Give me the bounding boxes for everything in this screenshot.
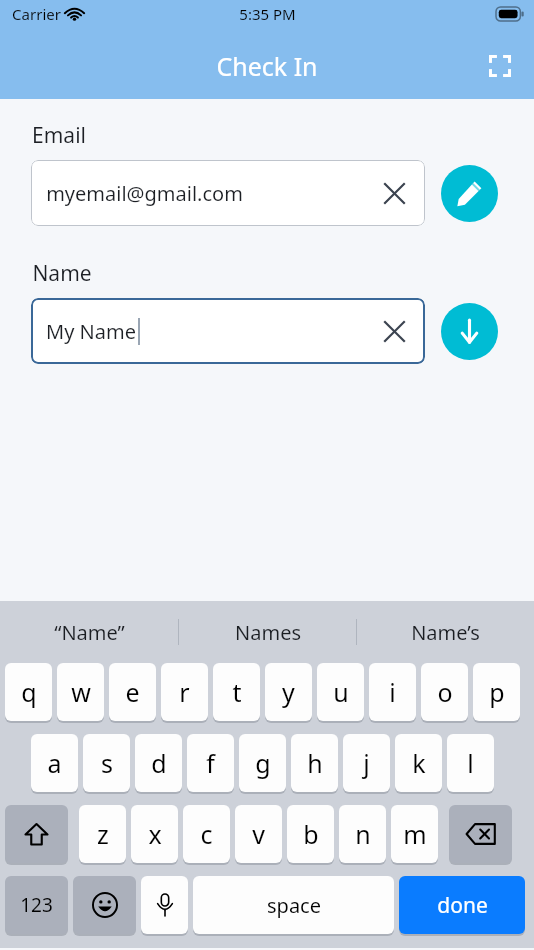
- button[interactable]: My Name: [31, 298, 425, 364]
- button[interactable]: f: [187, 734, 234, 792]
- staticText: u: [333, 675, 349, 709]
- button[interactable]: [141, 876, 188, 934]
- staticText: o: [437, 675, 453, 709]
- button[interactable]: a: [31, 734, 78, 792]
- button[interactable]: [5, 805, 68, 863]
- other: Emoji: [73, 876, 136, 936]
- button[interactable]: s: [83, 734, 130, 792]
- staticText: t: [232, 675, 242, 709]
- other: Backspace: [449, 805, 512, 865]
- staticText: Check In: [216, 49, 318, 83]
- button[interactable]: v: [235, 805, 282, 863]
- staticText: g: [255, 746, 271, 780]
- staticText: l: [467, 746, 474, 780]
- button[interactable]: q: [5, 663, 52, 721]
- button[interactable]: “Name”: [0, 601, 178, 663]
- staticText: a: [47, 746, 62, 780]
- button[interactable]: Clear text: [377, 176, 411, 210]
- staticText: m: [403, 817, 427, 851]
- button[interactable]: Scan QR code: [480, 46, 520, 86]
- staticText: c: [200, 817, 213, 851]
- staticText: done: [437, 891, 488, 920]
- staticText: n: [355, 817, 371, 851]
- button[interactable]: z: [79, 805, 126, 863]
- staticText: b: [303, 817, 319, 851]
- staticText: Carrier: [12, 4, 61, 24]
- staticText: Name’s: [411, 619, 480, 646]
- staticText: j: [363, 746, 370, 780]
- button[interactable]: done: [399, 876, 525, 934]
- staticText: k: [412, 746, 426, 780]
- button[interactable]: c: [183, 805, 230, 863]
- button[interactable]: Clear text: [377, 314, 411, 348]
- button[interactable]: Name’s: [357, 601, 534, 663]
- button[interactable]: 123: [5, 876, 68, 934]
- button[interactable]: b: [287, 805, 334, 863]
- button[interactable]: myemail@gmail.com: [31, 160, 425, 226]
- button[interactable]: d: [135, 734, 182, 792]
- staticText: 5:35 PM: [239, 4, 296, 24]
- button[interactable]: l: [447, 734, 494, 792]
- other: Shift: [5, 805, 68, 865]
- staticText: space: [267, 892, 321, 919]
- button[interactable]: g: [239, 734, 286, 792]
- button[interactable]: w: [57, 663, 104, 721]
- staticText: f: [206, 746, 215, 780]
- button[interactable]: o: [421, 663, 468, 721]
- staticText: Name: [32, 259, 92, 288]
- staticText: “Name”: [54, 619, 125, 646]
- staticText: d: [151, 746, 167, 780]
- button[interactable]: t: [213, 663, 260, 721]
- button[interactable]: space: [193, 876, 394, 934]
- staticText: q: [21, 675, 37, 709]
- staticText: myemail@gmail.com: [46, 180, 243, 207]
- button[interactable]: h: [291, 734, 338, 792]
- button[interactable]: p: [473, 663, 520, 721]
- button[interactable]: [449, 805, 512, 863]
- staticText: y: [282, 675, 295, 709]
- staticText: p: [489, 675, 505, 709]
- button[interactable]: m: [391, 805, 438, 863]
- staticText: x: [148, 817, 162, 851]
- staticText: s: [101, 746, 113, 780]
- button[interactable]: j: [343, 734, 390, 792]
- other: Dictation: [141, 876, 188, 936]
- staticText: Names: [235, 619, 301, 646]
- button[interactable]: i: [369, 663, 416, 721]
- staticText: My Name: [46, 318, 136, 345]
- staticText: 123: [20, 892, 53, 918]
- button[interactable]: x: [131, 805, 178, 863]
- staticText: h: [307, 746, 323, 780]
- staticText: z: [97, 817, 109, 851]
- staticText: w: [71, 675, 91, 709]
- staticText: e: [125, 675, 140, 709]
- button[interactable]: r: [161, 663, 208, 721]
- staticText: r: [179, 675, 190, 709]
- button[interactable]: u: [317, 663, 364, 721]
- button[interactable]: n: [339, 805, 386, 863]
- button[interactable]: [73, 876, 136, 934]
- button[interactable]: Edit email: [441, 165, 498, 222]
- button[interactable]: Submit name: [441, 303, 498, 360]
- button[interactable]: e: [109, 663, 156, 721]
- staticText: v: [252, 817, 265, 851]
- button[interactable]: Names: [179, 601, 356, 663]
- button[interactable]: y: [265, 663, 312, 721]
- button[interactable]: k: [395, 734, 442, 792]
- staticText: Email: [32, 121, 86, 150]
- staticText: i: [389, 675, 396, 709]
